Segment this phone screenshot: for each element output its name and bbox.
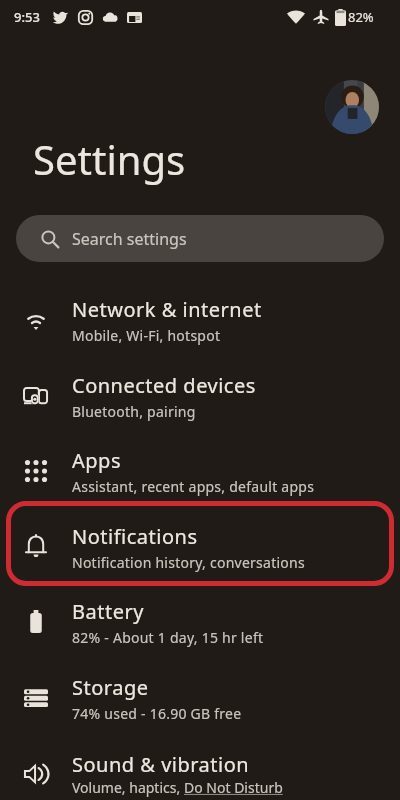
staticText: 9:53: [14, 8, 40, 26]
staticText: Storage: [72, 674, 149, 701]
staticText: 74% used - 16.90 GB free: [72, 704, 242, 723]
staticText: 82%: [348, 8, 374, 26]
staticText: Assistant, recent apps, default apps: [72, 477, 315, 496]
button[interactable]: Network & internet: [0, 282, 400, 358]
staticText: Settings: [33, 132, 186, 186]
staticText: Apps: [72, 447, 121, 474]
staticText: Notification history, conversations: [72, 553, 305, 572]
staticText: Do Not Disturb: [184, 778, 283, 797]
button[interactable]: Connected devices: [0, 358, 400, 434]
button[interactable]: [325, 80, 379, 134]
button[interactable]: Notifications: [0, 509, 400, 585]
button[interactable]: Sound & vibration: [0, 736, 400, 800]
button[interactable]: Search settings: [16, 215, 384, 262]
staticText: Connected devices: [72, 372, 256, 399]
button[interactable]: Apps: [0, 433, 400, 509]
staticText: 82% - About 1 day, 15 hr left: [72, 628, 264, 647]
staticText: Volume, haptics,: [72, 778, 184, 797]
staticText: Bluetooth, pairing: [72, 402, 196, 421]
staticText: Mobile, Wi-Fi, hotspot: [72, 326, 221, 345]
staticText: Battery: [72, 598, 144, 625]
staticText: Notifications: [72, 523, 198, 550]
staticText: Sound & vibration: [72, 751, 250, 778]
staticText: Network & internet: [72, 296, 262, 323]
button[interactable]: Battery: [0, 584, 400, 660]
staticText: Search settings: [72, 228, 187, 250]
button[interactable]: Storage: [0, 660, 400, 736]
